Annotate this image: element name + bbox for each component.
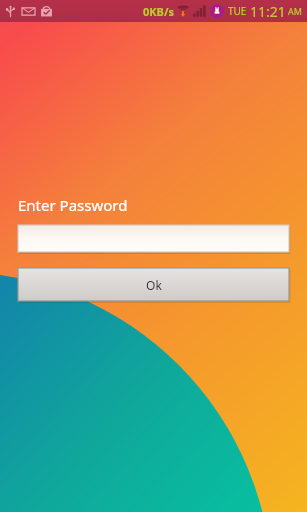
other: New mail (22, 5, 35, 18)
staticText: 0KB/s (143, 4, 174, 19)
button[interactable]: Ok (18, 268, 289, 301)
staticText: 11:21 (250, 2, 286, 21)
staticText: AM (288, 5, 302, 17)
other: Play Store update (40, 5, 53, 18)
other: USB connected (4, 5, 17, 18)
other: Wi-Fi (177, 5, 189, 17)
button[interactable]: Password input field (18, 225, 289, 252)
other: Charging (210, 4, 224, 18)
other: Cellular signal (193, 5, 206, 18)
staticText: TUE (228, 4, 247, 18)
staticText: Ok (146, 277, 162, 293)
staticText: Enter Password (18, 195, 128, 215)
